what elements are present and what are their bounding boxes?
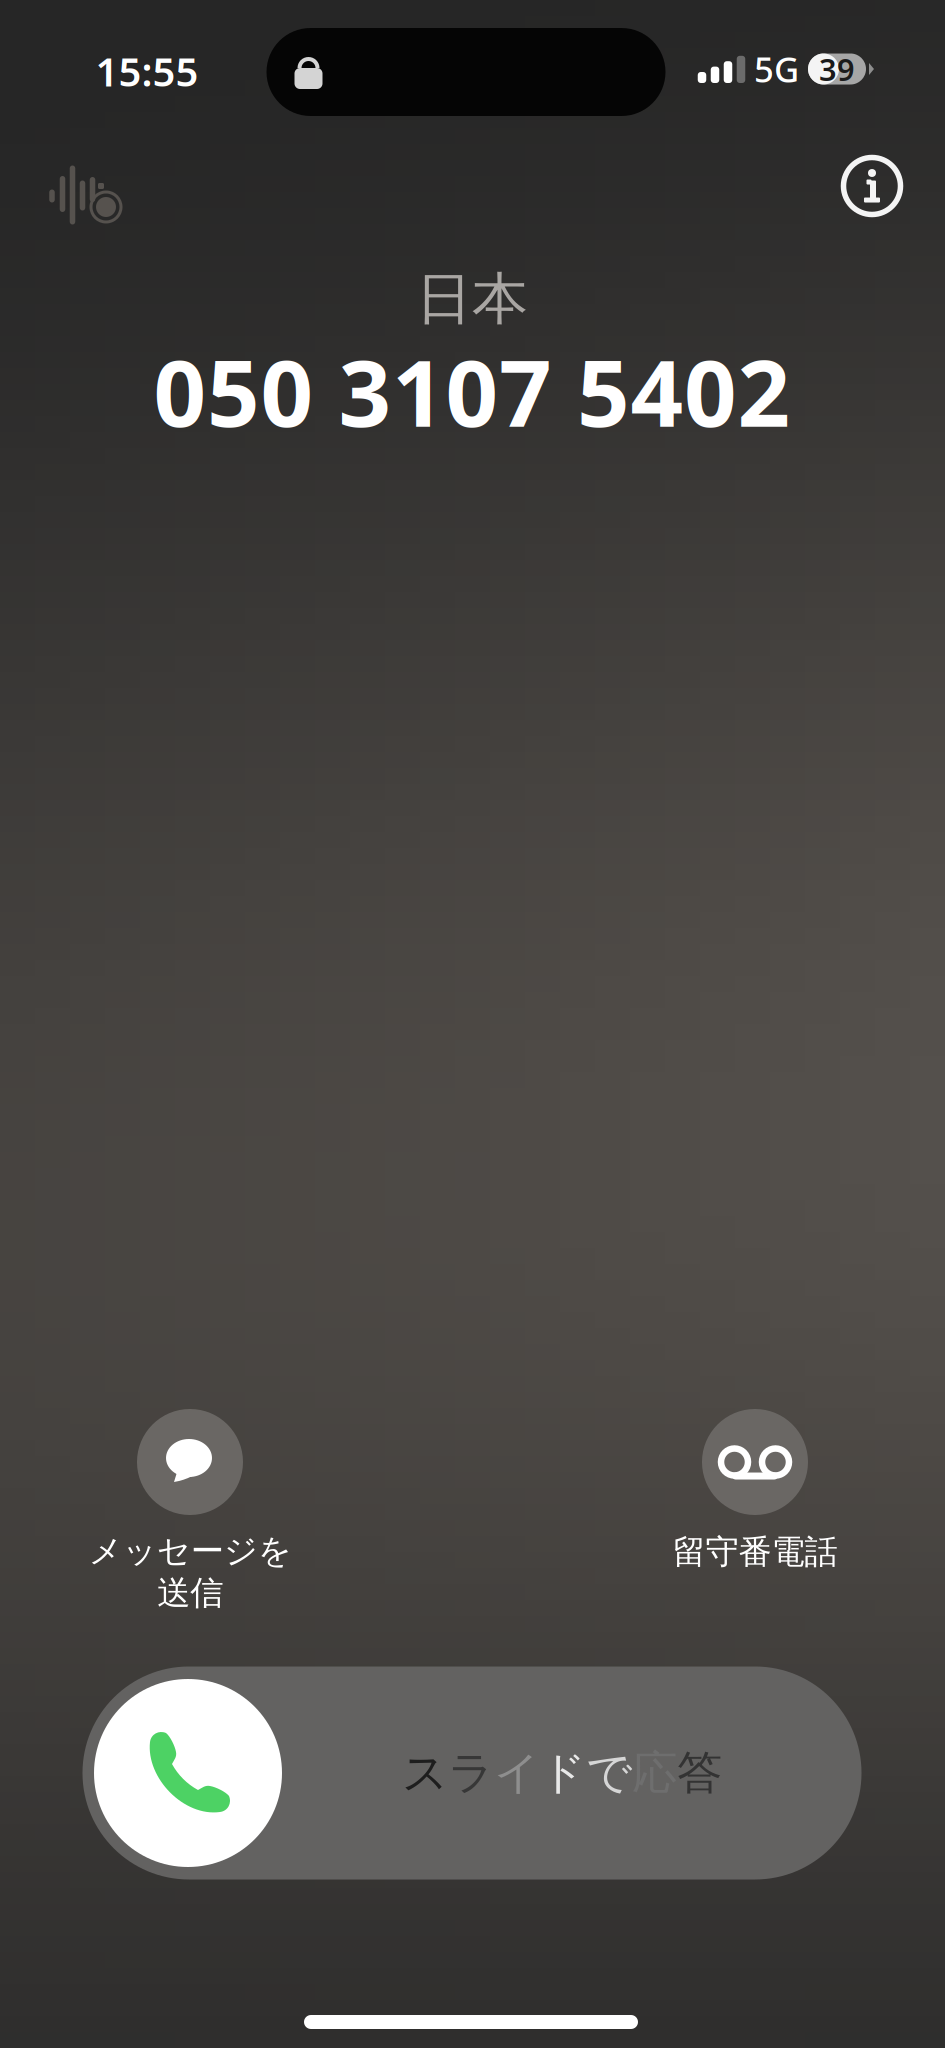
staticText: イ (494, 1745, 540, 1801)
staticText: 応 (632, 1745, 677, 1801)
staticText: 5G (754, 46, 799, 92)
staticText: で (586, 1745, 632, 1801)
button[interactable]: Slide to answer (82, 1666, 861, 1879)
staticText: 留守番電話 (672, 1531, 837, 1572)
staticText: 答 (677, 1745, 722, 1801)
staticText: 日本 (416, 265, 528, 333)
staticText: 15:55 (95, 44, 198, 97)
staticText: ド (540, 1745, 586, 1801)
button[interactable]: メッセージを 送信 (40, 1427, 340, 1667)
button[interactable]: 留守番電話 (605, 1427, 905, 1667)
staticText: 39 (819, 49, 855, 89)
staticText: メッセージを 送信 (88, 1531, 291, 1613)
staticText: ス (402, 1745, 448, 1801)
staticText: ラ (448, 1745, 494, 1801)
staticText: 050 3107 5402 (153, 330, 790, 452)
button[interactable]: Live Voicemail (26, 150, 130, 244)
button[interactable]: Call details (826, 140, 918, 232)
